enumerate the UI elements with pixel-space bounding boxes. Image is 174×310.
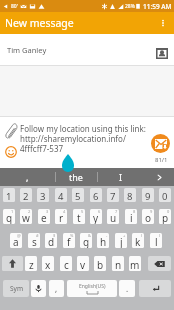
staticText: 0 (162, 190, 168, 202)
button[interactable]: a (10, 233, 22, 248)
button[interactable]: q (3, 209, 15, 224)
staticText: m (130, 258, 140, 271)
button[interactable]: , (0, 168, 55, 186)
button[interactable]: Insert emoticon (3, 144, 18, 159)
button[interactable]: 7 (107, 188, 119, 202)
button[interactable]: 2 (20, 188, 32, 202)
staticText: 6 (93, 190, 99, 202)
button[interactable]: k (132, 233, 144, 248)
button[interactable]: v (77, 256, 89, 271)
staticText: g (83, 235, 90, 248)
button[interactable]: i (125, 209, 137, 224)
staticText: English(US) (79, 283, 106, 290)
staticText: v (80, 258, 86, 271)
staticText: $ (53, 233, 56, 238)
button[interactable]: 1 (3, 188, 15, 202)
staticText: I (119, 171, 123, 183)
staticText: i (130, 211, 133, 224)
button[interactable]: More suggestions (145, 168, 174, 186)
button[interactable]: y (90, 209, 102, 224)
button[interactable]: , (49, 280, 64, 297)
staticText: the (69, 171, 83, 183)
staticText: 6 (98, 209, 101, 214)
button[interactable]: f (63, 233, 75, 248)
button[interactable]: Enter (139, 280, 171, 297)
staticText: 7 (110, 190, 116, 202)
staticText: 8 (133, 209, 136, 214)
button[interactable]: Shift (2, 256, 23, 271)
button[interactable]: j (115, 233, 127, 248)
staticText: o (145, 211, 152, 224)
button[interactable]: u (107, 209, 119, 224)
button[interactable]: o (142, 209, 154, 224)
button[interactable]: g (80, 233, 92, 248)
staticText: y (93, 211, 99, 224)
staticText: . (126, 283, 129, 294)
staticText: Follow my location using this link: http… (20, 123, 152, 154)
button[interactable]: e (38, 209, 50, 224)
staticText: 5 (75, 190, 81, 202)
button[interactable]: t (73, 209, 85, 224)
staticText: k (135, 235, 141, 248)
staticText: , (55, 283, 58, 294)
staticText: 9 (145, 190, 151, 202)
button[interactable]: Voice input (31, 280, 46, 297)
staticText: 3 (40, 190, 46, 202)
button[interactable]: Add recipient from contacts (154, 46, 169, 61)
staticText: p (162, 211, 169, 224)
staticText: h (100, 235, 107, 248)
button[interactable]: c (60, 256, 72, 271)
staticText: l (155, 235, 158, 248)
staticText: z (29, 258, 34, 271)
staticText: New message (5, 16, 74, 30)
button[interactable]: Sym (3, 280, 29, 297)
button[interactable]: More options (152, 12, 174, 34)
staticText: j (120, 235, 123, 248)
staticText: ) (159, 233, 161, 238)
button[interactable]: z (25, 256, 37, 271)
staticText: , (26, 171, 29, 183)
staticText: ( (141, 233, 143, 238)
button[interactable]: 3 (37, 188, 49, 202)
button[interactable]: Delete (148, 256, 171, 271)
button[interactable]: x (42, 256, 54, 271)
button[interactable]: d (45, 233, 57, 248)
staticText: 8 (127, 190, 133, 202)
button[interactable]: 9 (142, 188, 154, 202)
staticText: Tim Ganley (7, 45, 47, 55)
button[interactable]: 6 (90, 188, 102, 202)
staticText: e (41, 211, 47, 224)
button[interactable]: the (55, 168, 97, 186)
staticText: 81/1 (155, 156, 168, 164)
staticText: 2 (23, 190, 29, 202)
staticText: r (59, 211, 64, 224)
button[interactable]: 8 (124, 188, 136, 202)
button[interactable]: I (97, 168, 145, 186)
staticText: Sym (10, 284, 23, 293)
staticText: q (6, 211, 13, 224)
staticText: 2 (28, 209, 31, 214)
button[interactable]: l (150, 233, 162, 248)
button[interactable]: Attach (3, 123, 19, 139)
staticText: 9 (150, 209, 153, 214)
staticText: c (64, 258, 69, 271)
button[interactable]: b (94, 256, 106, 271)
button[interactable]: h (97, 233, 109, 248)
button[interactable]: Space (67, 280, 117, 297)
button[interactable]: 0 (159, 188, 171, 202)
button[interactable]: p (159, 209, 171, 224)
button[interactable]: r (55, 209, 67, 224)
button[interactable]: 4 (55, 188, 67, 202)
staticText: 80' (11, 3, 18, 10)
staticText: 1 (6, 190, 12, 202)
button[interactable]: m (129, 256, 141, 271)
button[interactable]: w (20, 209, 32, 224)
staticText: % (70, 233, 74, 238)
button[interactable]: n (112, 256, 124, 271)
staticText: s (32, 235, 37, 248)
button[interactable]: . (119, 280, 135, 297)
button[interactable]: s (28, 233, 40, 248)
button[interactable]: 5 (72, 188, 84, 202)
button[interactable]: Send (151, 134, 170, 153)
staticText: u (110, 211, 117, 224)
